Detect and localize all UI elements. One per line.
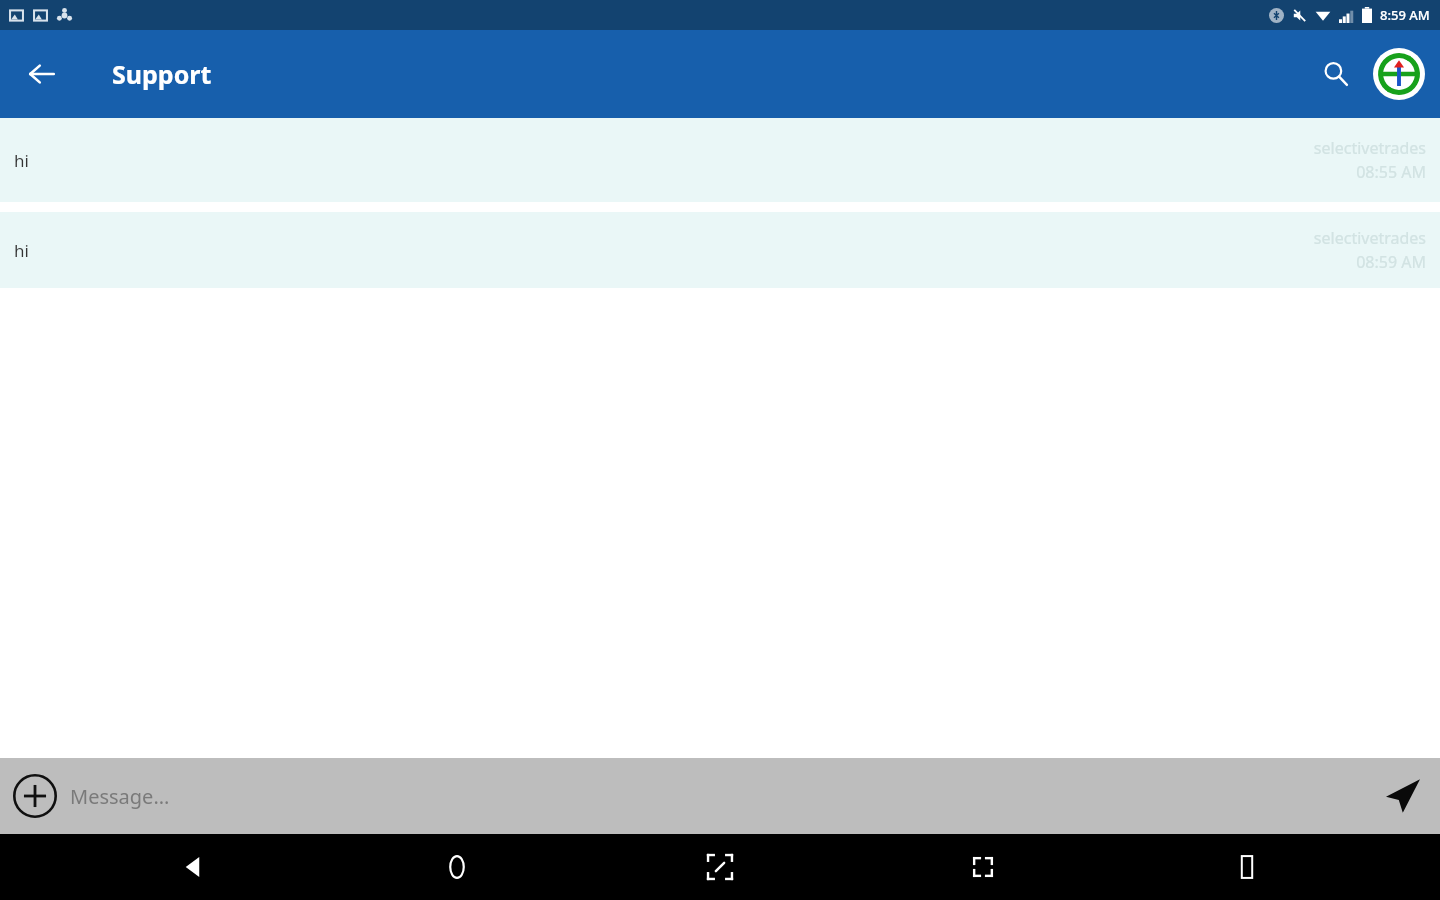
button[interactable]: Home	[387, 834, 527, 900]
staticText: Support	[112, 57, 212, 91]
button[interactable]: Expand	[650, 834, 790, 900]
button[interactable]: Back	[14, 46, 70, 102]
button[interactable]: hi	[0, 118, 1440, 202]
button[interactable]: Back	[123, 834, 263, 900]
staticText: selectivetrades	[1313, 137, 1426, 159]
button[interactable]: Collapse	[913, 834, 1053, 900]
staticText: 8:59 AM	[1380, 6, 1430, 24]
button[interactable]: hi	[0, 212, 1440, 288]
staticText: hi	[14, 149, 29, 172]
button[interactable]: Send	[1364, 758, 1440, 834]
staticText: 08:55 AM	[1356, 161, 1426, 183]
staticText: hi	[14, 239, 29, 262]
staticText: selectivetrades	[1313, 227, 1426, 249]
button[interactable]: Add attachment	[0, 761, 70, 831]
button[interactable]: Profile	[1372, 47, 1426, 101]
button[interactable]: Message...	[70, 783, 1364, 810]
button[interactable]: Search	[1310, 48, 1362, 100]
staticText: 08:59 AM	[1356, 251, 1426, 273]
button[interactable]: Recents	[1177, 834, 1317, 900]
